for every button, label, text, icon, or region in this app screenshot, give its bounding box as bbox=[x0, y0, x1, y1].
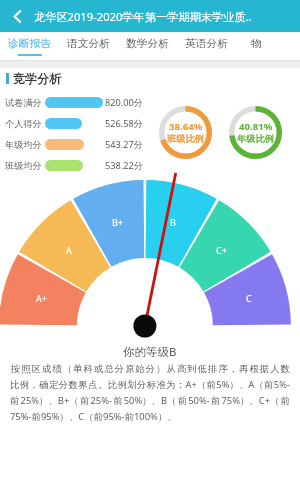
staticText: 543.27分 bbox=[105, 138, 143, 151]
button[interactable]: Back bbox=[0, 0, 34, 32]
staticText: 物 bbox=[251, 37, 262, 51]
staticText: 诊断报告 bbox=[8, 37, 52, 51]
staticText: 龙华区2019-2020学年第一学期期末学业质.. bbox=[34, 9, 252, 24]
button[interactable]: 英语分析 bbox=[185, 32, 229, 61]
staticText: 个人得分 bbox=[5, 118, 42, 130]
staticText: 38.64% bbox=[169, 120, 203, 133]
staticText: 40.81% bbox=[239, 120, 273, 133]
staticText: 语文分析 bbox=[67, 37, 111, 51]
staticText: 英语分析 bbox=[185, 37, 229, 51]
staticText: 数学分析 bbox=[126, 37, 170, 51]
staticText: C bbox=[246, 292, 252, 304]
staticText: 班级均分 bbox=[5, 160, 42, 172]
staticText: C+ bbox=[216, 244, 227, 256]
staticText: 526.58分 bbox=[105, 117, 143, 130]
staticText: A+ bbox=[36, 292, 47, 304]
staticText: 你的等级B bbox=[123, 344, 177, 360]
staticText: 年级比例 bbox=[237, 133, 274, 145]
staticText: 按照区成绩（单科或总分原始分）从高到低排序，再根据人数比例，确定分数界点。比例划… bbox=[10, 362, 290, 423]
button[interactable]: 物 bbox=[244, 32, 268, 61]
staticText: B+ bbox=[112, 216, 123, 228]
staticText: B bbox=[170, 216, 176, 228]
button[interactable]: 语文分析 bbox=[67, 32, 111, 61]
staticText: 竞学分析 bbox=[13, 71, 61, 86]
button[interactable]: 数学分析 bbox=[126, 32, 170, 61]
staticText: 试卷满分 bbox=[5, 97, 42, 109]
staticText: 班级比例 bbox=[167, 133, 204, 145]
staticText: A bbox=[66, 244, 72, 256]
staticText: 820.00分 bbox=[105, 96, 143, 109]
button[interactable]: 诊断报告 bbox=[8, 32, 52, 61]
staticText: 年级均分 bbox=[5, 139, 42, 151]
staticText: 538.22分 bbox=[105, 159, 143, 172]
